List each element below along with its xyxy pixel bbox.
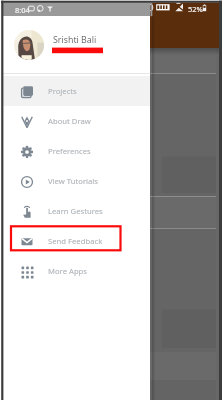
staticText: 8:04 <box>15 5 30 15</box>
staticText: Send Feedback <box>48 236 103 246</box>
staticText: View Tutorials <box>48 176 99 186</box>
staticText: 52% <box>188 4 203 14</box>
staticText: More Apps <box>48 266 88 276</box>
staticText: Projects <box>48 86 77 96</box>
staticText: Learn Gestures <box>48 206 103 216</box>
staticText: Preferences <box>48 146 91 156</box>
staticText: About Draw <box>48 116 91 126</box>
button[interactable]: Preferences <box>3 136 150 166</box>
button[interactable]: Learn Gestures <box>3 196 150 226</box>
button[interactable]: View Tutorials <box>3 166 150 196</box>
button[interactable]: About Draw <box>3 106 150 136</box>
button[interactable]: Send Feedback <box>3 226 150 256</box>
staticText: Srishti Bali <box>53 34 97 46</box>
button[interactable]: More Apps <box>3 256 150 286</box>
button[interactable]: Projects <box>3 76 150 106</box>
